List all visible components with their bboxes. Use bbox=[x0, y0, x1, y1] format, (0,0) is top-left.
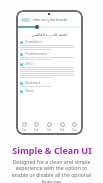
staticText: Tab bbox=[47, 128, 52, 132]
staticText: Tab bbox=[22, 128, 27, 132]
staticText: Bookmark bbox=[25, 81, 41, 85]
staticText: Simple & Clean UI bbox=[12, 144, 92, 156]
staticText: Tab bbox=[60, 128, 65, 132]
staticText: الحمد لله رب العالمين bbox=[16, 32, 83, 37]
button[interactable]: Tab bbox=[32, 120, 41, 134]
staticText: Tab bbox=[34, 128, 39, 132]
button[interactable]: Tab bbox=[45, 120, 54, 134]
button[interactable]: Tab bbox=[70, 120, 79, 134]
staticText: Share bbox=[25, 89, 34, 93]
button[interactable] bbox=[21, 18, 30, 22]
staticText: after every farsh/surah bbox=[33, 18, 68, 22]
button[interactable]: Tab bbox=[20, 120, 29, 134]
staticText: Tafsir bbox=[25, 62, 34, 66]
button[interactable]: Tab bbox=[58, 120, 67, 134]
staticText: Translation bbox=[25, 40, 42, 44]
staticText: Designed for a clean and simple experien… bbox=[8, 158, 95, 183]
staticText: Tab bbox=[72, 128, 77, 132]
staticText: Transliteration bbox=[25, 52, 47, 56]
button[interactable] bbox=[35, 25, 39, 29]
